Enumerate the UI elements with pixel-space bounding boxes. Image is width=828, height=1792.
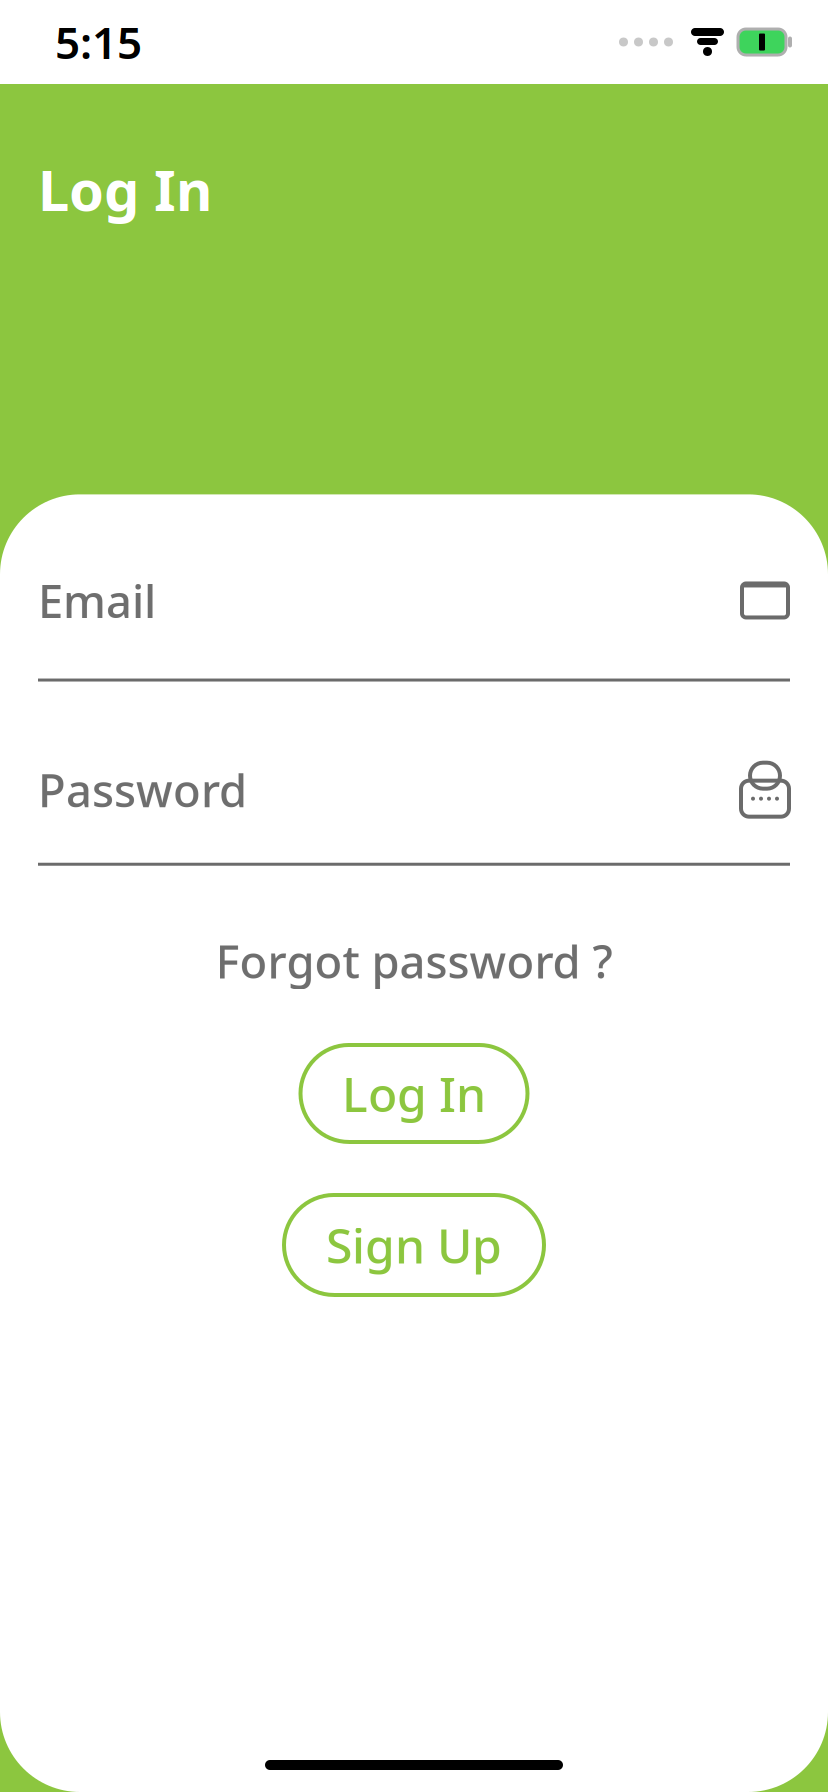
button[interactable]: Sign Up <box>284 1195 544 1295</box>
staticText: Log In <box>38 152 212 226</box>
staticText: 5:15 <box>55 13 142 71</box>
staticText: Password <box>38 760 247 820</box>
staticText: Forgot password ? <box>215 931 612 991</box>
button[interactable]: Log In <box>300 1045 527 1142</box>
button[interactable]: Forgot password ? <box>195 921 632 1001</box>
staticText: Email <box>38 570 156 631</box>
button[interactable]: Password <box>0 760 828 820</box>
button[interactable]: Email <box>0 570 828 631</box>
staticText: Sign Up <box>326 1213 502 1277</box>
staticText: Log In <box>342 1062 486 1125</box>
